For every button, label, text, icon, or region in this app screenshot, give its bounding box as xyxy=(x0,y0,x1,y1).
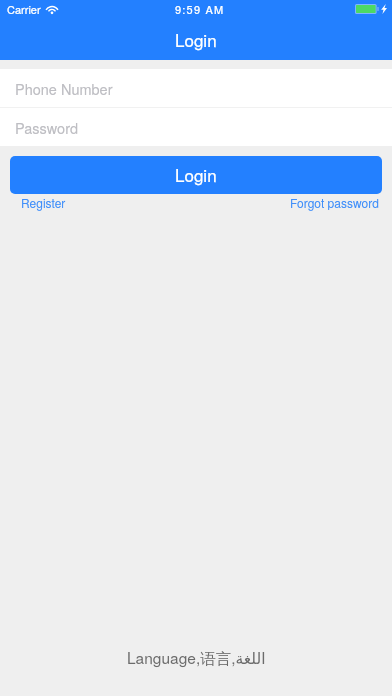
other: Battery charging xyxy=(355,4,387,14)
button[interactable]: Register xyxy=(0,194,76,213)
button[interactable]: Language,语言,اللغة xyxy=(119,643,274,671)
staticText: Language,语言,اللغة xyxy=(127,646,266,668)
staticText: Forgot password xyxy=(290,194,379,211)
staticText: Password xyxy=(15,117,79,138)
staticText: Phone Number xyxy=(15,78,113,99)
button[interactable]: Password xyxy=(0,108,392,146)
button[interactable]: Forgot password xyxy=(280,194,392,213)
staticText: 9:59 AM xyxy=(175,1,225,17)
button[interactable]: Phone Number xyxy=(0,69,392,107)
staticText: Register xyxy=(21,194,66,211)
staticText: Login xyxy=(175,162,217,186)
other: Wi-Fi signal xyxy=(46,5,58,14)
staticText: Login xyxy=(175,27,217,51)
button[interactable]: Login xyxy=(10,156,382,194)
staticText: Carrier xyxy=(7,1,41,17)
